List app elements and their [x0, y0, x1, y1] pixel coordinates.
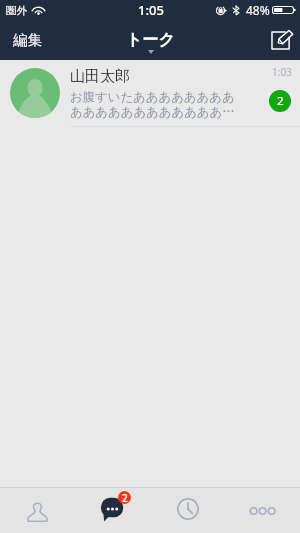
button[interactable]: New chat: [262, 20, 300, 60]
staticText: お腹すいたあああああああああああああああああああああああああああああああ: [70, 89, 240, 120]
button[interactable]: Chats: [75, 488, 150, 533]
button[interactable]: Timeline: [150, 488, 225, 533]
button[interactable]: More: [225, 488, 300, 533]
staticText: 1:05: [138, 1, 164, 19]
staticText: トーク: [126, 30, 175, 50]
staticText: 圏外: [6, 4, 27, 17]
button[interactable]: Friends: [0, 488, 75, 533]
button[interactable]: トーク: [126, 30, 175, 50]
staticText: 山田太郎: [70, 67, 130, 86]
staticText: 2: [277, 93, 284, 109]
button[interactable]: 編集: [0, 20, 55, 60]
staticText: 1:03: [272, 65, 292, 79]
button[interactable]: 山田太郎: [0, 60, 300, 127]
staticText: 2: [122, 491, 128, 504]
staticText: 48%: [246, 2, 270, 18]
staticText: 編集: [13, 31, 42, 49]
